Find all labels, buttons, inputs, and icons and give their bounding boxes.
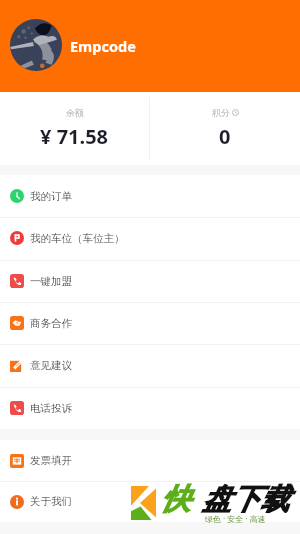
button[interactable]: 我的车位（车位主） <box>0 217 300 259</box>
staticText: 一键加盟 <box>30 275 72 288</box>
button[interactable]: 商务合作 <box>0 302 300 344</box>
staticText: 绿色 · 安全 · 高速 <box>205 513 266 524</box>
staticText: 我的车位（车位主） <box>30 232 125 245</box>
button[interactable]: 发票填开 <box>0 440 300 481</box>
staticText: 0 <box>219 123 231 150</box>
staticText: 积分 <box>212 107 230 118</box>
staticText: 余额 <box>66 107 84 118</box>
button[interactable]: 一键加盟 <box>0 260 300 302</box>
button[interactable]: 关于我们 <box>0 481 300 522</box>
staticText: 我的订单 <box>30 190 72 203</box>
staticText: 商务合作 <box>30 317 72 330</box>
staticText: Empcode <box>70 36 136 56</box>
staticText: 电话投诉 <box>30 402 72 415</box>
staticText: 关于我们 <box>30 495 72 508</box>
button[interactable]: 积分 <box>150 92 300 165</box>
button[interactable]: 电话投诉 <box>0 387 300 429</box>
staticText: ¥ 71.58 <box>40 123 109 150</box>
button[interactable]: 意见建议 <box>0 344 300 386</box>
button[interactable]: Profile avatar <box>10 19 62 71</box>
staticText: 意见建议 <box>30 359 72 372</box>
staticText: 快 <box>161 481 190 518</box>
button[interactable]: 余额 <box>0 92 149 165</box>
staticText: 盘下载 <box>202 481 289 518</box>
button[interactable]: 我的订单 <box>0 175 300 217</box>
staticText: 发票填开 <box>30 454 72 467</box>
